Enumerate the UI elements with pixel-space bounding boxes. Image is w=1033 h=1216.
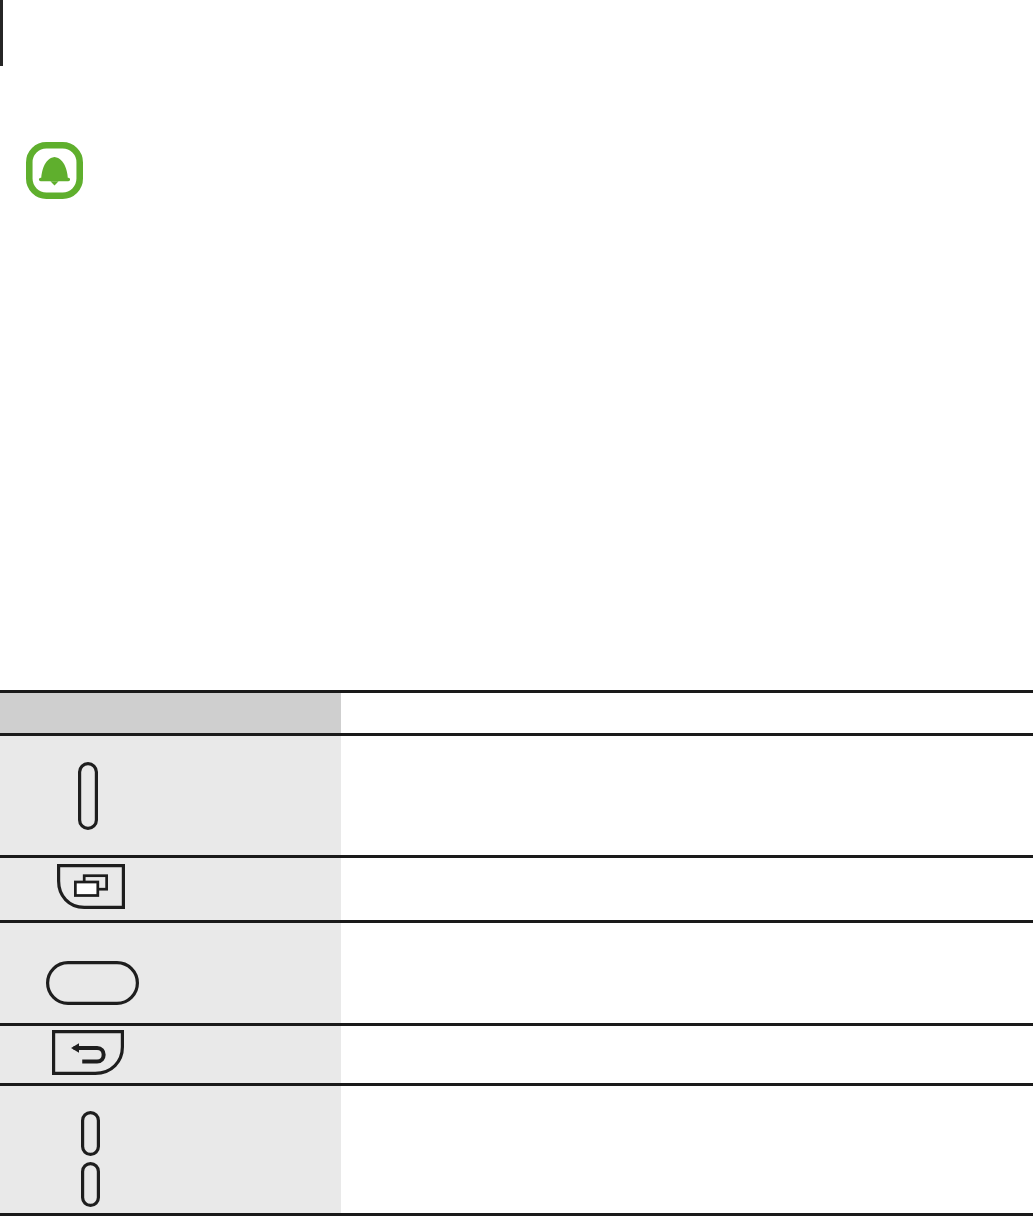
button[interactable]: Recents key — [57, 864, 125, 909]
button[interactable]: Volume up key — [81, 1111, 100, 1156]
other: Note — [26, 142, 83, 199]
button[interactable]: Power key — [78, 762, 98, 830]
button[interactable]: Home key — [46, 961, 139, 1005]
button[interactable]: Volume down key — [81, 1162, 100, 1207]
button[interactable]: Back key — [52, 1030, 124, 1075]
